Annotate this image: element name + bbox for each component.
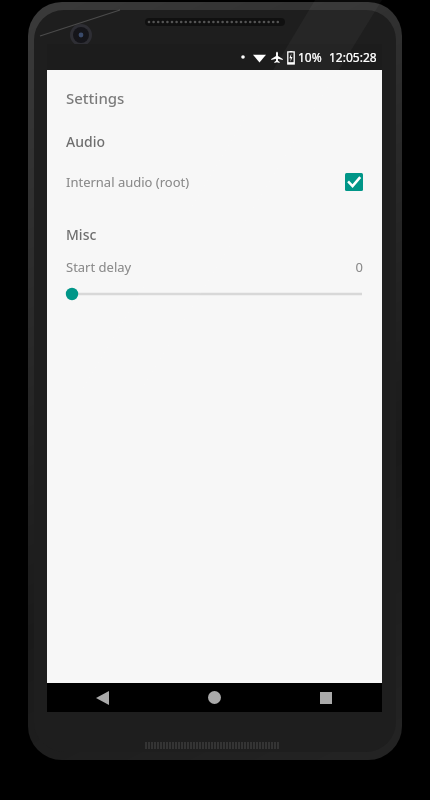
other: Start delay slider <box>66 287 363 301</box>
button[interactable]: Internal audio (root) <box>47 165 382 199</box>
other: Internal audio (root) checkbox <box>345 173 363 191</box>
staticText: 12:05:28 <box>329 49 377 65</box>
button[interactable]: Home <box>158 683 270 712</box>
button[interactable]: Start delay <box>47 258 382 301</box>
staticText: Settings <box>66 88 125 108</box>
staticText: 0 <box>355 258 363 276</box>
staticText: Audio <box>66 132 105 151</box>
staticText: Start delay <box>66 258 132 276</box>
button[interactable]: Back <box>47 683 158 712</box>
staticText: Misc <box>66 225 97 244</box>
staticText: Internal audio (root) <box>66 173 190 191</box>
button[interactable]: Recent apps <box>270 683 382 712</box>
staticText: 10% <box>298 49 322 65</box>
